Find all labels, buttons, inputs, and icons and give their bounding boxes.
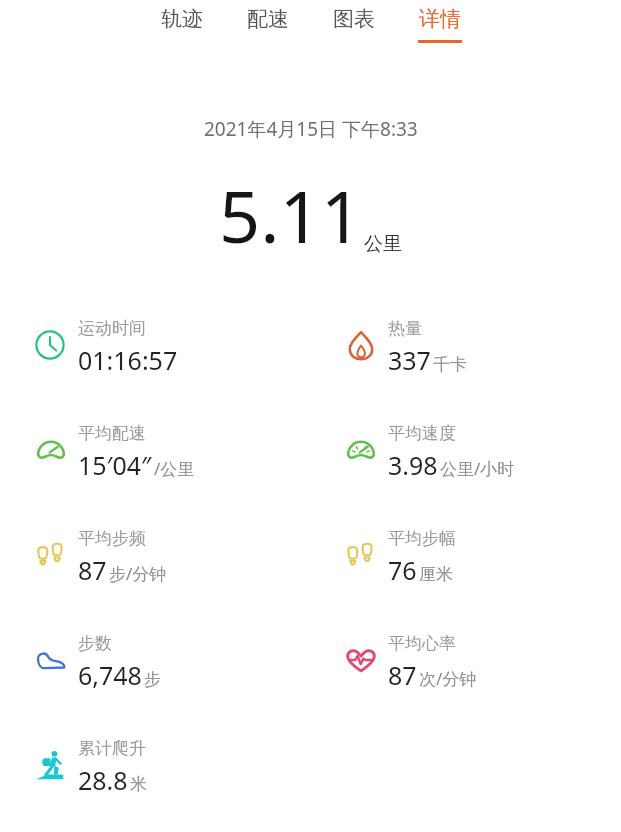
button[interactable]: 平均心率 xyxy=(310,619,621,724)
button[interactable]: 配速 xyxy=(236,0,300,49)
staticText: 6,748 xyxy=(78,658,142,692)
staticText: 累计爬升 xyxy=(78,738,146,759)
staticText: 87 xyxy=(78,553,107,587)
staticText: 337 xyxy=(388,343,431,377)
staticText: 次/分钟 xyxy=(419,667,477,690)
staticText: 公里 xyxy=(364,232,402,256)
staticText: 详情 xyxy=(419,6,461,32)
button[interactable]: 运动时间 xyxy=(0,304,310,409)
staticText: 热量 xyxy=(388,318,422,339)
staticText: 28.8 xyxy=(78,763,128,797)
button[interactable]: 平均步幅 xyxy=(310,514,621,619)
button[interactable]: 图表 xyxy=(322,0,386,49)
staticText: 图表 xyxy=(333,6,375,32)
staticText: 平均速度 xyxy=(388,423,456,444)
button[interactable]: 步数 xyxy=(0,619,310,724)
staticText: 平均步频 xyxy=(78,528,146,549)
other: 平均步幅 xyxy=(344,538,378,572)
other: 平均配速 xyxy=(34,433,68,467)
staticText: 76 xyxy=(388,553,417,587)
staticText: 运动时间 xyxy=(78,318,146,339)
button[interactable]: 平均步频 xyxy=(0,514,310,619)
staticText: 5.11 xyxy=(219,166,362,264)
staticText: 2021年4月15日 下午8:33 xyxy=(204,116,418,142)
other: 步数 xyxy=(34,643,68,677)
other: 平均步频 xyxy=(34,538,68,572)
staticText: 米 xyxy=(130,774,147,795)
other: 运动时间 xyxy=(34,328,68,362)
staticText: 平均配速 xyxy=(78,423,146,444)
button[interactable]: 热量 xyxy=(310,304,621,409)
staticText: 千卡 xyxy=(433,354,467,375)
button[interactable]: 轨迹 xyxy=(150,0,214,49)
button[interactable]: 详情 xyxy=(408,0,472,49)
staticText: 平均心率 xyxy=(388,633,456,654)
other: 平均速度 xyxy=(344,433,378,467)
staticText: 平均步幅 xyxy=(388,528,456,549)
button[interactable]: 累计爬升 xyxy=(0,724,310,829)
button[interactable]: 平均速度 xyxy=(310,409,621,514)
staticText: 公里/小时 xyxy=(440,457,515,480)
staticText: 15′04″ xyxy=(78,448,152,482)
staticText: 01:16:57 xyxy=(78,343,178,377)
button[interactable]: 平均配速 xyxy=(0,409,310,514)
staticText: 配速 xyxy=(247,6,289,32)
other: 平均心率 xyxy=(344,643,378,677)
staticText: 3.98 xyxy=(388,448,438,482)
staticText: 步/分钟 xyxy=(109,562,167,585)
staticText: 厘米 xyxy=(419,564,453,585)
staticText: /公里 xyxy=(154,457,195,480)
staticText: 87 xyxy=(388,658,417,692)
other: 热量 xyxy=(344,328,378,362)
staticText: 轨迹 xyxy=(161,6,203,32)
staticText: 步数 xyxy=(78,633,112,654)
staticText: 步 xyxy=(144,669,161,690)
other: 累计爬升 xyxy=(34,748,68,782)
